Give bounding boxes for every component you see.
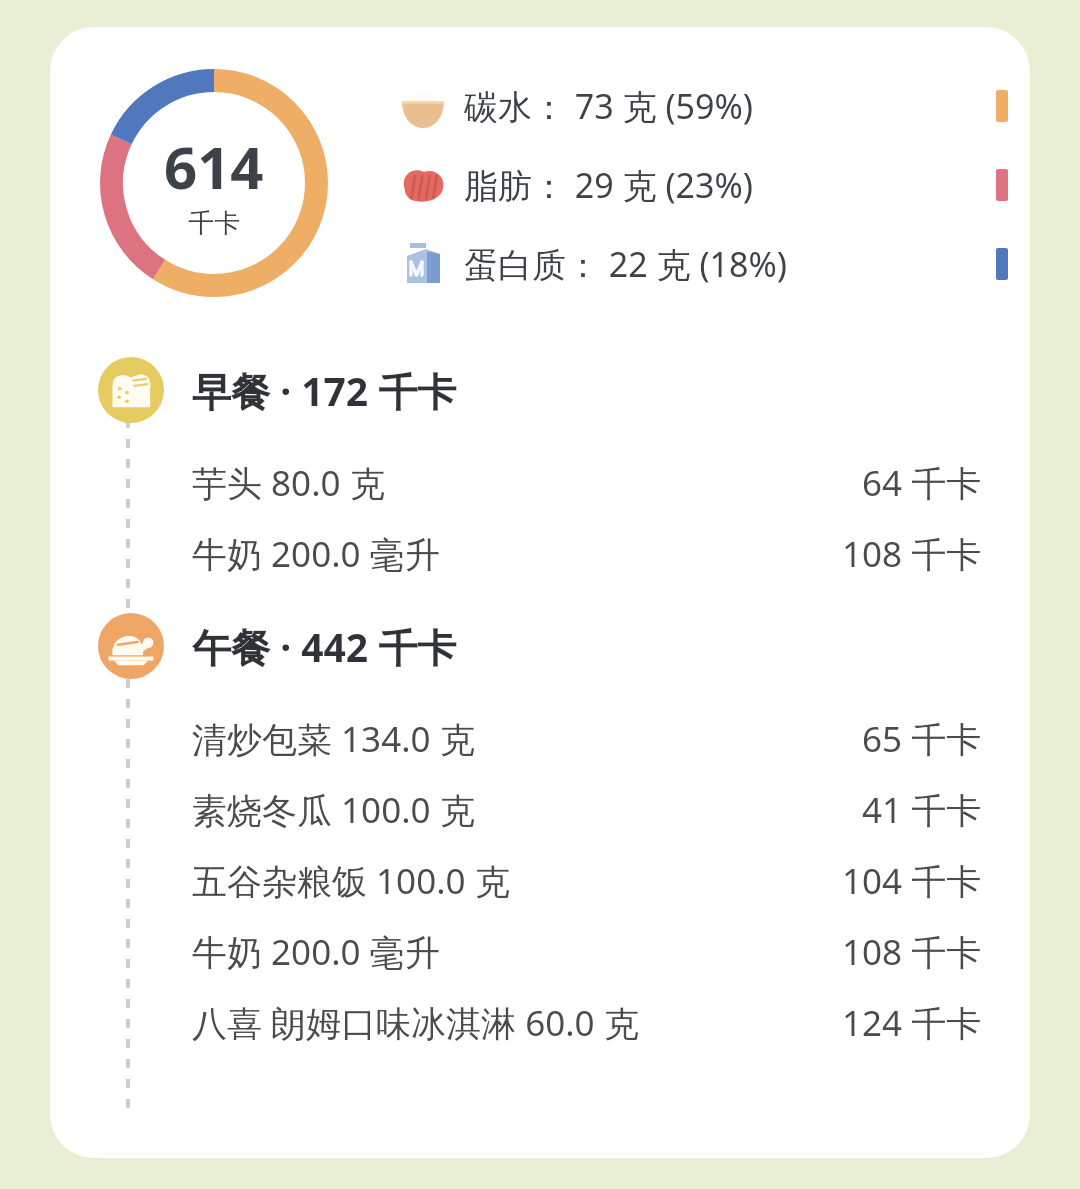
staticText: 64 千卡 [862, 459, 982, 507]
staticText: 614 [164, 127, 264, 206]
staticText: 五谷杂粮饭 100.0 克 [192, 857, 510, 905]
staticText: 午餐 · 442 千卡 [192, 620, 457, 673]
staticText: 牛奶 200.0 毫升 [192, 530, 440, 578]
button[interactable]: 早餐 · 172 千卡 [50, 357, 1030, 423]
staticText: 早餐 · 172 千卡 [192, 364, 457, 417]
staticText: 108 千卡 [842, 928, 982, 976]
other: 脂肪： [396, 158, 450, 212]
staticText: 108 千卡 [842, 530, 982, 578]
button[interactable]: 五谷杂粮饭 100.0 克 [50, 845, 1030, 916]
staticText: 脂肪： 29 克 (23%) [464, 162, 753, 208]
button[interactable]: 碳水： [396, 79, 1030, 133]
button[interactable]: 芋头 80.0 克 [50, 447, 1030, 518]
button[interactable]: 八喜 朗姆口味冰淇淋 60.0 克 [50, 987, 1030, 1058]
other: 蛋白质： [396, 237, 450, 291]
button[interactable]: 素烧冬瓜 100.0 克 [50, 774, 1030, 845]
staticText: 104 千卡 [842, 857, 982, 905]
staticText: 清炒包菜 134.0 克 [192, 715, 475, 763]
staticText: 八喜 朗姆口味冰淇淋 60.0 克 [192, 999, 639, 1047]
staticText: 41 千卡 [862, 786, 982, 834]
staticText: 素烧冬瓜 100.0 克 [192, 786, 475, 834]
button[interactable]: 脂肪： [396, 158, 1030, 212]
staticText: 124 千卡 [842, 999, 982, 1047]
staticText: 蛋白质： 22 克 (18%) [464, 241, 787, 287]
other: 碳水： [396, 79, 450, 133]
button[interactable]: 蛋白质： [396, 237, 1030, 291]
staticText: 千卡 [188, 207, 240, 240]
staticText: 牛奶 200.0 毫升 [192, 928, 440, 976]
staticText: 65 千卡 [862, 715, 982, 763]
button[interactable]: 牛奶 200.0 毫升 [50, 518, 1030, 589]
staticText: 碳水： 73 克 (59%) [464, 83, 753, 129]
button[interactable]: 午餐 · 442 千卡 [50, 613, 1030, 679]
button[interactable]: 清炒包菜 134.0 克 [50, 703, 1030, 774]
staticText: 芋头 80.0 克 [192, 459, 385, 507]
button[interactable]: 牛奶 200.0 毫升 [50, 916, 1030, 987]
